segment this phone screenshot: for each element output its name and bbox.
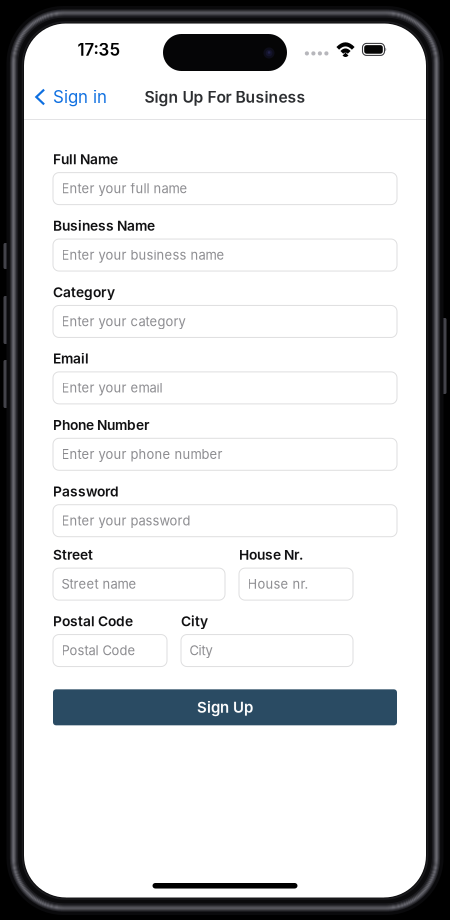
staticText: Enter your email	[61, 380, 162, 396]
staticText: Business Name	[53, 217, 155, 234]
staticText: Full Name	[53, 151, 118, 168]
staticText: Phone Number	[53, 417, 149, 433]
staticText: Street	[53, 546, 93, 563]
staticText: Email	[53, 350, 89, 367]
staticText: Enter your phone number	[61, 446, 222, 462]
staticText: Password	[53, 483, 119, 500]
staticText: 17:35	[77, 40, 120, 60]
staticText: Street name	[61, 576, 136, 592]
staticText: Enter your business name	[61, 247, 224, 263]
staticText: Enter your full name	[61, 181, 187, 196]
staticText: City	[181, 613, 208, 629]
staticText: House nr.	[247, 576, 308, 592]
button[interactable]: Sign Up	[53, 689, 397, 725]
staticText: Sign in	[53, 87, 107, 107]
staticText: City	[189, 643, 212, 658]
staticText: Sign Up For Business	[144, 88, 305, 106]
staticText: Enter your category	[61, 314, 185, 329]
staticText: Category	[53, 284, 115, 300]
staticText: Postal Code	[53, 613, 133, 629]
staticText: Sign Up	[197, 698, 253, 716]
staticText: House Nr.	[239, 546, 303, 563]
button[interactable]: Sign in	[24, 80, 118, 114]
staticText: Enter your password	[61, 513, 190, 528]
staticText: Postal Code	[61, 643, 135, 658]
